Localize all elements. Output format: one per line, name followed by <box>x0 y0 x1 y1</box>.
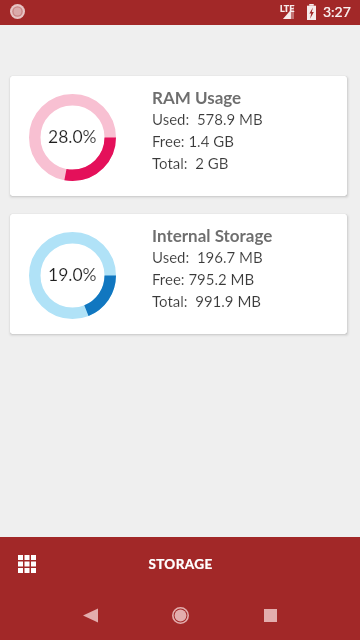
staticText: Free: 795.2 MB <box>152 270 255 288</box>
button[interactable]: Back <box>45 591 135 640</box>
button[interactable]: 19.0% <box>10 214 347 334</box>
staticText: 3:27 <box>323 3 351 20</box>
button[interactable]: Apps <box>0 537 54 591</box>
staticText: STORAGE <box>148 556 213 572</box>
staticText: 19.0% <box>48 264 97 285</box>
button[interactable]: Home <box>135 591 225 640</box>
staticText: Used: 578.9 MB <box>152 110 263 128</box>
staticText: Total: 991.9 MB <box>152 292 262 310</box>
staticText: Used: 196.7 MB <box>152 248 263 266</box>
staticText: LTE <box>280 3 295 14</box>
staticText: Free: 1.4 GB <box>152 132 234 150</box>
staticText: Total: 2 GB <box>152 154 229 172</box>
staticText: 28.0% <box>48 126 97 147</box>
button[interactable]: Recents <box>225 591 315 640</box>
staticText: Internal Storage <box>152 225 273 245</box>
staticText: RAM Usage <box>152 87 242 107</box>
button[interactable]: 28.0% <box>10 76 347 196</box>
